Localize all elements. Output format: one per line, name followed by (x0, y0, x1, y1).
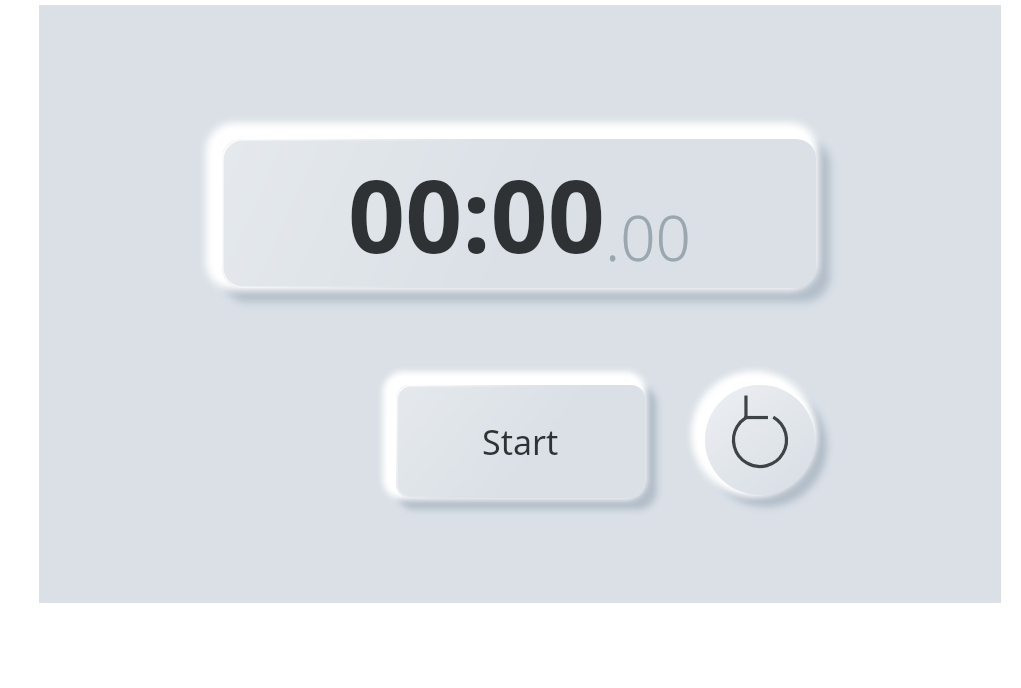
button[interactable]: Reset (705, 385, 815, 495)
staticText: .00 (605, 195, 691, 279)
staticText: Start (482, 419, 559, 465)
staticText: 00:00 (348, 146, 605, 282)
button[interactable]: 00:00 (222, 139, 816, 288)
button[interactable]: Start (396, 385, 645, 498)
